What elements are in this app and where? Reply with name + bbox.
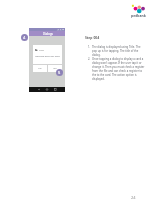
staticText: 1. bbox=[88, 45, 92, 49]
staticText: 4 bbox=[23, 35, 26, 40]
button[interactable]: YES bbox=[48, 65, 62, 72]
staticText: Once tapping a dialog to display a card … bbox=[92, 57, 145, 81]
staticText: NO bbox=[38, 67, 42, 70]
staticText: YES bbox=[53, 67, 57, 70]
button[interactable]: NO bbox=[33, 65, 47, 72]
staticText: Step 004 bbox=[85, 35, 100, 40]
staticText: Dialogs bbox=[43, 32, 53, 36]
staticText: Message body text goes right here bbox=[35, 55, 60, 58]
staticText: Title bbox=[39, 48, 44, 51]
staticText: The dialog is displayed using Title. The… bbox=[92, 45, 145, 57]
staticText: 24 bbox=[131, 195, 136, 200]
button[interactable]: Step 5 bbox=[56, 69, 63, 76]
staticText: 2. bbox=[88, 57, 92, 61]
button[interactable]: Step 4 bbox=[21, 34, 28, 41]
staticText: pedbank bbox=[131, 13, 146, 18]
staticText: 5 bbox=[58, 70, 61, 75]
